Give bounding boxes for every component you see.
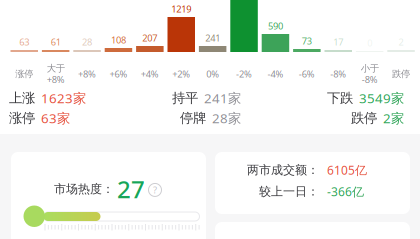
staticText: 0 [367, 37, 372, 49]
staticText: -4% [267, 68, 283, 80]
staticText: -2% [236, 68, 252, 80]
staticText: -8% [362, 73, 378, 86]
staticText: 63家 [41, 109, 70, 127]
staticText: +8% [78, 68, 96, 80]
staticText: 持平 [172, 90, 198, 106]
staticText: 市场热度： [54, 182, 114, 196]
staticText: 2家 [383, 109, 404, 127]
button[interactable]: 市场热度： [11, 152, 206, 239]
staticText: 241家 [204, 89, 241, 107]
staticText: 跌停 [351, 110, 377, 126]
staticText: 0% [206, 68, 219, 80]
staticText: 2 [398, 36, 403, 48]
staticText: 108 [111, 34, 126, 46]
staticText: 停牌 [180, 110, 206, 126]
staticText: 28 [82, 36, 92, 48]
staticText: -8% [330, 68, 346, 80]
staticText: 73 [302, 35, 312, 47]
staticText: 大于 [47, 63, 65, 74]
button[interactable]: 两市成交额： [215, 152, 410, 214]
staticText: 241 [205, 32, 220, 44]
staticText: 上涨 [9, 90, 35, 106]
staticText: 下跌 [327, 90, 353, 106]
staticText: 61 [51, 36, 61, 48]
staticText: 1219 [171, 3, 191, 15]
staticText: 1623家 [41, 89, 86, 107]
staticText: 63 [19, 36, 29, 48]
staticText: 17 [333, 36, 343, 48]
staticText: 跌停 [392, 68, 410, 80]
staticText: +8% [47, 73, 65, 86]
staticText: 小于 [361, 63, 379, 74]
staticText: ? [153, 184, 157, 196]
staticText: 两市成交额： [247, 163, 319, 177]
staticText: 27 [117, 173, 145, 205]
staticText: 207 [142, 32, 157, 44]
staticText: 涨停 [15, 68, 33, 80]
staticText: 590 [268, 20, 283, 32]
staticText: 6105亿 [327, 162, 367, 178]
staticText: 较上一日： [259, 184, 319, 199]
staticText: -6% [299, 68, 315, 80]
staticText: 28家 [212, 109, 241, 127]
staticText: +4% [141, 68, 159, 80]
staticText: +6% [109, 68, 127, 80]
staticText: 涨停 [9, 110, 35, 126]
staticText: 3549家 [359, 89, 404, 107]
staticText: -366亿 [327, 183, 364, 199]
staticText: +2% [172, 68, 190, 80]
